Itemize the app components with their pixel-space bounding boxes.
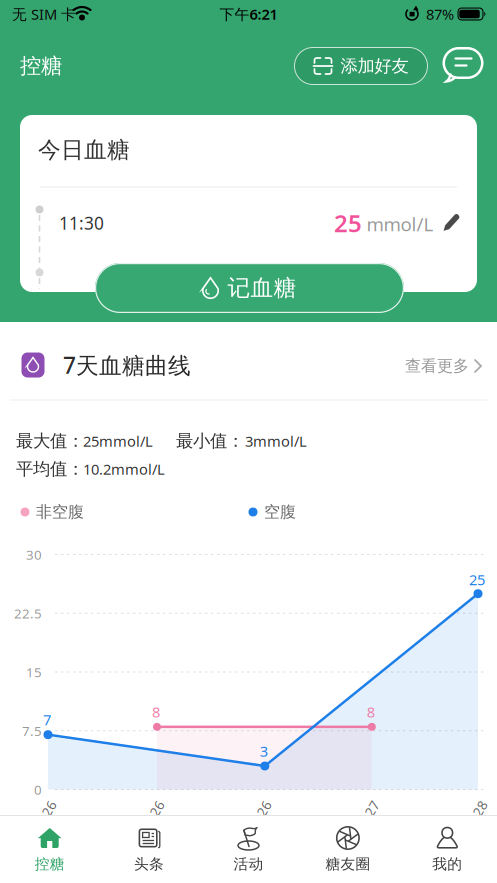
staticText: 7 — [43, 710, 51, 729]
staticText: 控糖 — [35, 855, 65, 873]
button[interactable]: 记血糖 — [95, 263, 404, 313]
staticText: 87% — [426, 4, 454, 24]
staticText: 查看更多 — [405, 356, 469, 376]
staticText: 头条 — [134, 855, 164, 873]
staticText: 3mmol/L — [245, 431, 307, 451]
staticText: 非空腹 — [36, 502, 84, 522]
staticText: 添加好友 — [340, 55, 408, 77]
button[interactable]: 头条 — [99, 818, 199, 880]
staticText: 平均值： — [16, 458, 84, 480]
button[interactable]: 糖友圈 — [298, 818, 398, 880]
staticText: 15 — [26, 663, 42, 681]
staticText: 05-26 — [134, 808, 170, 826]
staticText: 10.2mmol/L — [83, 459, 165, 479]
button[interactable]: 控糖 — [0, 818, 99, 880]
staticText: 我的 — [432, 855, 462, 873]
staticText: 05-28 — [457, 808, 493, 826]
button[interactable]: 编辑血糖 — [439, 209, 465, 235]
staticText: 25 — [334, 207, 362, 239]
staticText: mmol/L — [366, 212, 433, 236]
staticText: 下午6:21 — [219, 4, 277, 24]
staticText: 22.5 — [14, 604, 42, 622]
button[interactable]: 添加好友 — [294, 47, 428, 85]
staticText: 活动 — [233, 855, 263, 873]
staticText: 无 SIM 卡 — [12, 4, 76, 24]
staticText: 最大值： — [16, 430, 84, 452]
staticText: 控糖 — [20, 53, 62, 79]
staticText: 8 — [367, 702, 375, 722]
button[interactable]: 活动 — [199, 818, 298, 880]
staticText: 空腹 — [264, 502, 296, 522]
staticText: 7.5 — [22, 722, 42, 740]
staticText: 最小值： — [176, 430, 244, 452]
staticText: 25mmol/L — [83, 431, 153, 451]
staticText: 7天血糖曲线 — [63, 350, 191, 380]
staticText: 3 — [260, 741, 268, 761]
staticText: 05-26 — [26, 808, 62, 826]
staticText: 30 — [26, 546, 42, 563]
button[interactable]: 消息 — [439, 43, 487, 87]
staticText: 记血糖 — [227, 274, 296, 302]
staticText: 8 — [152, 702, 160, 722]
staticText: 糖友圈 — [325, 855, 370, 873]
staticText: 11:30 — [59, 211, 104, 234]
button[interactable]: 我的 — [398, 818, 497, 880]
staticText: 05-26 — [241, 808, 277, 826]
staticText: 今日血糖 — [38, 136, 130, 164]
staticText: 0 — [34, 781, 42, 798]
staticText: 05-27 — [349, 808, 385, 826]
staticText: 25 — [469, 570, 485, 589]
button[interactable]: 查看更多 — [405, 356, 483, 376]
